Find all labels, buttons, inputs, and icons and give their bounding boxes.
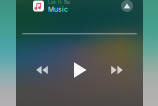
- button[interactable]: Rewind: [29, 59, 55, 81]
- button[interactable]: Play: [66, 59, 92, 81]
- button[interactable]: AirPlay: [121, 0, 133, 12]
- button[interactable]: Music: [33, 0, 44, 11]
- button[interactable]: Fast forward: [104, 59, 130, 81]
- staticText: Music: [48, 5, 68, 13]
- staticText: Let It Be: [48, 0, 70, 5]
